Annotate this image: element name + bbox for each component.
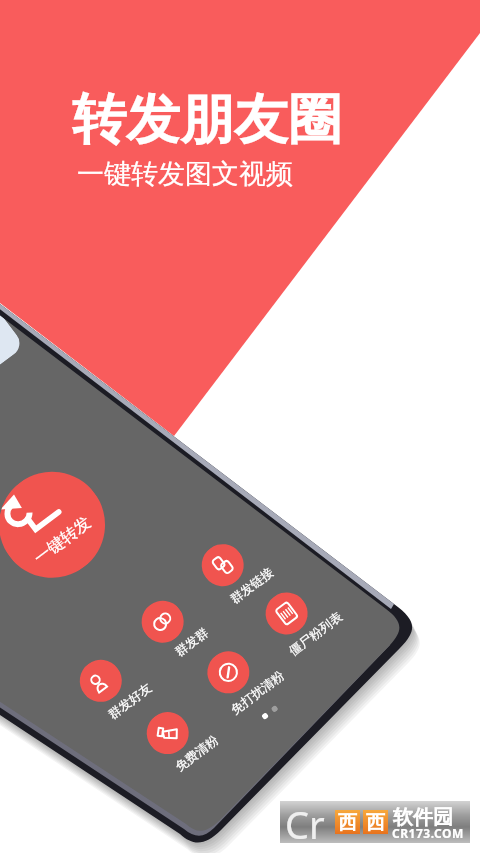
staticText: 西 bbox=[366, 811, 385, 835]
staticText: Cr bbox=[285, 798, 325, 840]
staticText: 僵尸粉列表 bbox=[279, 603, 354, 666]
staticText: 西 bbox=[338, 811, 357, 835]
staticText: CR173.COM bbox=[392, 825, 464, 841]
staticText: 免费清粉 bbox=[160, 723, 235, 786]
staticText: 群发群 bbox=[155, 612, 230, 674]
button[interactable]: 一键转发 bbox=[0, 450, 126, 599]
staticText: 一键转发图文视频 bbox=[77, 157, 293, 191]
staticText: 软件园 bbox=[393, 805, 453, 830]
button[interactable]: 群发群 bbox=[133, 592, 192, 651]
button[interactable]: 群发好友 bbox=[71, 651, 130, 710]
staticText: 转发朋友圈 bbox=[72, 86, 342, 154]
staticText: 群发好友 bbox=[93, 671, 168, 733]
button[interactable]: 僵尸粉列表 bbox=[257, 584, 316, 643]
button[interactable]: 免费清粉 bbox=[138, 704, 197, 762]
button[interactable]: 免打扰清粉 bbox=[199, 643, 258, 702]
staticText: 免打扰清粉 bbox=[221, 662, 295, 725]
staticText: 一键转发 bbox=[30, 512, 95, 568]
staticText: 群发链接 bbox=[215, 555, 290, 618]
button[interactable]: 群发链接 bbox=[193, 536, 252, 595]
